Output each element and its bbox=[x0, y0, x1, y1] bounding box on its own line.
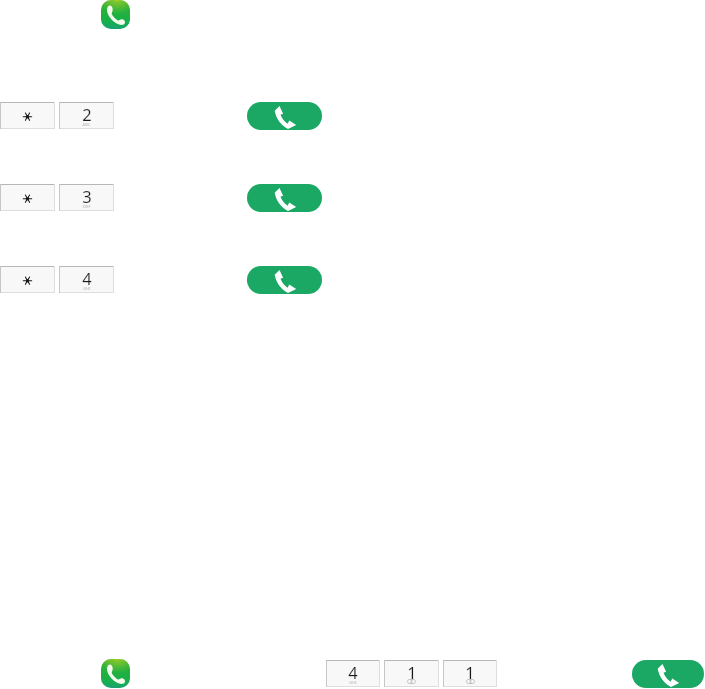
button[interactable]: Call bbox=[247, 184, 322, 212]
button[interactable]: 4 bbox=[59, 266, 114, 293]
staticText: 4 bbox=[82, 267, 92, 289]
staticText: 2 bbox=[82, 103, 92, 125]
staticText: 1 bbox=[407, 661, 417, 683]
button[interactable]: 4 bbox=[326, 660, 380, 687]
button[interactable]: 2 bbox=[59, 102, 114, 129]
button[interactable]: Call bbox=[247, 266, 322, 294]
button[interactable]: 3 bbox=[59, 184, 114, 211]
button[interactable]: Star key bbox=[0, 102, 55, 129]
button[interactable]: 1 bbox=[384, 660, 439, 687]
staticText: GHI bbox=[83, 286, 91, 291]
button[interactable]: Phone app bbox=[101, 659, 130, 688]
staticText: 3 bbox=[82, 185, 92, 207]
button[interactable]: Call bbox=[247, 102, 322, 130]
staticText: ABC bbox=[82, 122, 91, 127]
staticText: DEF bbox=[83, 204, 91, 209]
staticText: GHI bbox=[349, 680, 357, 685]
button[interactable]: Star key bbox=[0, 184, 55, 211]
button[interactable]: Call bbox=[632, 660, 704, 688]
button[interactable]: Star key bbox=[0, 266, 55, 293]
button[interactable]: 1 bbox=[443, 660, 497, 687]
staticText: 1 bbox=[465, 661, 475, 683]
staticText: 4 bbox=[348, 661, 358, 683]
button[interactable]: Phone app bbox=[101, 0, 130, 29]
